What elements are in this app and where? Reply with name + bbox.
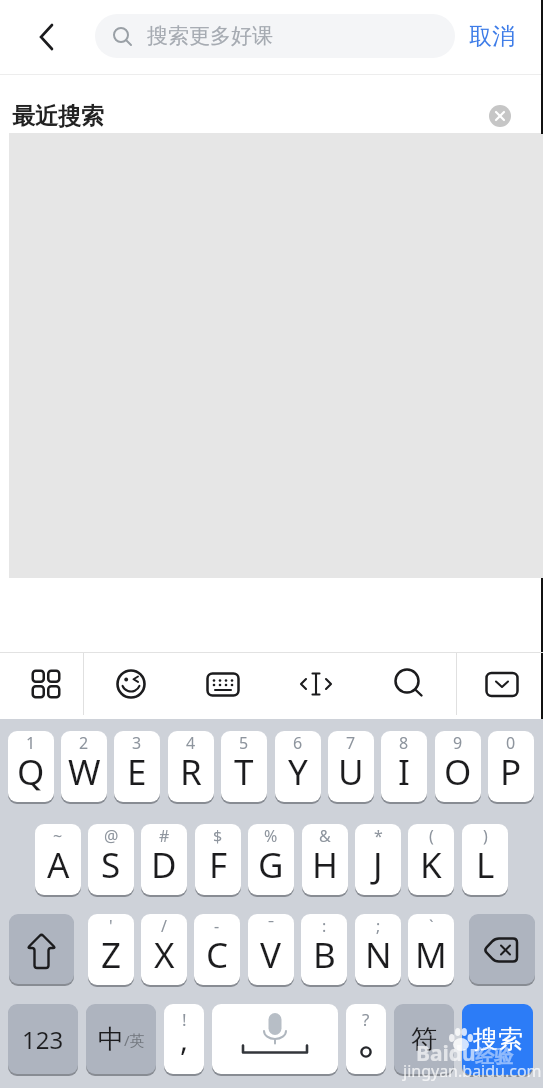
button[interactable]: / <box>141 914 187 985</box>
staticText: 0 <box>506 732 516 754</box>
staticText: Z <box>101 931 122 979</box>
staticText: 符 <box>411 1023 437 1056</box>
staticText: V <box>260 931 282 979</box>
staticText: ~ <box>53 825 63 847</box>
button[interactable]: 0 <box>488 731 534 802</box>
staticText: - <box>214 915 220 937</box>
staticText: 123 <box>22 1023 64 1056</box>
button[interactable]: 123 <box>8 1004 78 1074</box>
staticText: @ <box>104 825 119 847</box>
staticText: 最近搜索 <box>12 102 104 131</box>
staticText: M <box>415 931 447 979</box>
staticText: 搜索更多好课 <box>147 23 273 49</box>
staticText: Y <box>288 748 308 796</box>
staticText: 1 <box>26 732 36 754</box>
staticText: ( <box>429 825 434 847</box>
button[interactable]: 2 <box>61 731 107 802</box>
button[interactable]: ` <box>408 914 454 985</box>
button[interactable] <box>480 662 524 706</box>
button[interactable]: ? <box>346 1004 386 1074</box>
button[interactable]: ~ <box>35 824 81 895</box>
staticText: O <box>444 748 472 796</box>
staticText: R <box>180 748 202 796</box>
button[interactable]: 5 <box>221 731 267 802</box>
staticText: ? <box>362 1008 370 1031</box>
button[interactable]: & <box>302 824 348 895</box>
button[interactable] <box>201 662 245 706</box>
staticText: ) <box>483 825 488 847</box>
button[interactable]: 搜索更多好课 <box>95 14 455 58</box>
button[interactable]: ( <box>408 824 454 895</box>
button[interactable]: @ <box>88 824 134 895</box>
staticText: Baidu <box>416 1039 476 1068</box>
button[interactable]: % <box>248 824 294 895</box>
button[interactable]: 6 <box>275 731 321 802</box>
button[interactable]: ) <box>462 824 508 895</box>
staticText: W <box>68 748 101 796</box>
staticText: F <box>209 841 228 889</box>
staticText: B <box>313 931 336 979</box>
staticText: 7 <box>346 732 356 754</box>
staticText: S <box>101 841 121 889</box>
button[interactable]: 符 <box>394 1004 454 1074</box>
staticText: D <box>151 841 177 889</box>
staticText: 2 <box>79 732 89 754</box>
staticText: 4 <box>186 732 196 754</box>
button[interactable]: 9 <box>435 731 481 802</box>
button[interactable] <box>9 914 74 984</box>
button[interactable]: 3 <box>114 731 160 802</box>
staticText: 搜索 <box>473 1024 523 1055</box>
button[interactable]: 取消 <box>460 10 524 62</box>
staticText: C <box>206 931 229 979</box>
button[interactable]: 中 <box>86 1004 156 1074</box>
button[interactable]: * <box>355 824 401 895</box>
staticText: A <box>47 841 70 889</box>
button[interactable]: ; <box>355 914 401 985</box>
staticText: P <box>500 748 522 796</box>
staticText: * <box>374 825 383 847</box>
button[interactable]: ˉ <box>248 914 294 985</box>
staticText: % <box>264 825 278 847</box>
staticText: G <box>258 841 284 889</box>
staticText: 中 <box>98 1023 124 1056</box>
button[interactable] <box>28 18 66 56</box>
button[interactable]: $ <box>195 824 241 895</box>
button[interactable]: - <box>194 914 240 985</box>
staticText: / <box>161 915 167 937</box>
button[interactable]: # <box>141 824 187 895</box>
button[interactable] <box>387 662 431 706</box>
staticText: L <box>476 841 495 889</box>
staticText: ˉ <box>268 915 275 937</box>
button[interactable] <box>469 914 535 984</box>
button[interactable]: 7 <box>328 731 374 802</box>
staticText: 3 <box>132 732 142 754</box>
staticText: E <box>127 748 147 796</box>
staticText: /英 <box>124 1030 145 1050</box>
button[interactable] <box>488 104 512 128</box>
button[interactable]: 4 <box>168 731 214 802</box>
staticText: I <box>398 748 410 796</box>
staticText: ' <box>109 915 113 937</box>
staticText: 8 <box>399 732 409 754</box>
button[interactable]: : <box>301 914 347 985</box>
staticText: : <box>322 915 327 937</box>
staticText: , <box>180 1019 189 1060</box>
button[interactable]: 1 <box>8 731 54 802</box>
button[interactable] <box>109 662 153 706</box>
staticText: $ <box>213 825 223 847</box>
staticText: ! <box>182 1008 187 1031</box>
button[interactable] <box>212 1004 338 1074</box>
staticText: H <box>312 841 338 889</box>
button[interactable]: 搜索 <box>462 1004 533 1075</box>
button[interactable]: ' <box>88 914 134 985</box>
button[interactable] <box>294 662 338 706</box>
button[interactable]: 8 <box>381 731 427 802</box>
staticText: 9 <box>453 732 463 754</box>
staticText: ` <box>429 915 434 937</box>
button[interactable]: ! <box>164 1004 204 1074</box>
staticText: 经验 <box>475 1045 513 1069</box>
staticText: U <box>338 748 364 796</box>
staticText: K <box>420 841 442 889</box>
staticText: 取消 <box>469 22 515 51</box>
button[interactable] <box>24 662 68 706</box>
